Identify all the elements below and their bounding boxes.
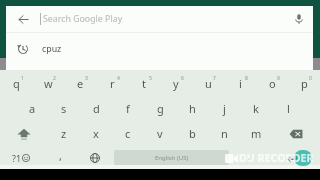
staticText: p — [301, 76, 308, 91]
staticText: h — [189, 101, 196, 116]
staticText: t — [142, 76, 146, 91]
button[interactable]: English (US) — [114, 150, 229, 165]
staticText: i — [239, 76, 242, 91]
staticText: r — [110, 76, 115, 91]
staticText: c — [125, 126, 131, 141]
button[interactable]: Back — [6, 6, 40, 32]
staticText: z — [61, 126, 67, 141]
button[interactable]: c — [112, 121, 144, 146]
staticText: f — [126, 101, 130, 116]
staticText: 4 — [117, 75, 120, 82]
button[interactable]: v — [144, 121, 176, 146]
staticText: 6 — [181, 75, 184, 82]
staticText: o — [269, 76, 276, 91]
staticText: ?1 — [12, 152, 22, 164]
button[interactable]: z — [48, 121, 80, 146]
button[interactable]: t — [128, 71, 160, 96]
staticText: m — [251, 126, 262, 141]
button[interactable]: d — [80, 96, 112, 121]
button[interactable]: cpuz — [6, 33, 313, 64]
staticText: 2 — [53, 75, 56, 82]
button[interactable]: h — [176, 96, 208, 121]
staticText: e — [77, 76, 84, 91]
button[interactable]: Change language — [79, 146, 111, 169]
button[interactable]: q — [0, 71, 32, 96]
staticText: English (US) — [155, 154, 189, 162]
button[interactable]: g — [144, 96, 176, 121]
staticText: x — [93, 126, 99, 141]
button[interactable]: s — [48, 96, 80, 121]
staticText: Search Google Play — [43, 13, 123, 25]
staticText: w — [44, 76, 53, 91]
staticText: q — [13, 76, 20, 91]
button[interactable]: k — [240, 96, 272, 121]
staticText: 9 — [277, 75, 280, 82]
staticText: cpuz — [42, 43, 62, 55]
staticText: , — [59, 148, 62, 163]
button[interactable]: y — [160, 71, 192, 96]
button[interactable]: , — [41, 146, 79, 169]
staticText: 3 — [85, 75, 88, 82]
button[interactable]: u — [192, 71, 224, 96]
button[interactable]: n — [208, 121, 240, 146]
staticText: 8 — [245, 75, 248, 82]
button[interactable]: p — [288, 71, 320, 96]
button[interactable]: Voice search — [285, 6, 313, 32]
button[interactable]: a — [16, 96, 48, 121]
staticText: n — [221, 126, 228, 141]
staticText: k — [253, 101, 259, 116]
button[interactable]: m — [240, 121, 272, 146]
button[interactable]: o — [256, 71, 288, 96]
staticText: y — [173, 76, 179, 91]
staticText: 5 — [149, 75, 152, 82]
staticText: a — [29, 101, 36, 116]
staticText: l — [287, 101, 290, 116]
staticText: 7 — [213, 75, 216, 82]
staticText: g — [157, 101, 164, 116]
staticText: u — [205, 76, 212, 91]
staticText: 1 — [21, 75, 24, 82]
staticText: DU RECORDER — [239, 151, 314, 165]
staticText: j — [223, 101, 226, 116]
button[interactable]: . — [232, 146, 264, 169]
staticText: v — [157, 126, 163, 141]
button[interactable]: b — [176, 121, 208, 146]
button[interactable]: Search — [264, 146, 320, 169]
staticText: s — [61, 101, 67, 116]
staticText: . — [247, 148, 250, 163]
button[interactable]: Symbols — [0, 146, 41, 169]
button[interactable]: l — [272, 96, 304, 121]
button[interactable]: Shift — [0, 121, 48, 146]
button[interactable]: w — [32, 71, 64, 96]
button[interactable]: j — [208, 96, 240, 121]
button[interactable]: Backspace — [272, 121, 320, 146]
button[interactable]: i — [224, 71, 256, 96]
staticText: 0 — [309, 75, 312, 82]
button[interactable]: x — [80, 121, 112, 146]
staticText: d — [93, 101, 100, 116]
button[interactable]: r — [96, 71, 128, 96]
button[interactable]: f — [112, 96, 144, 121]
button[interactable]: e — [64, 71, 96, 96]
staticText: b — [189, 126, 196, 141]
